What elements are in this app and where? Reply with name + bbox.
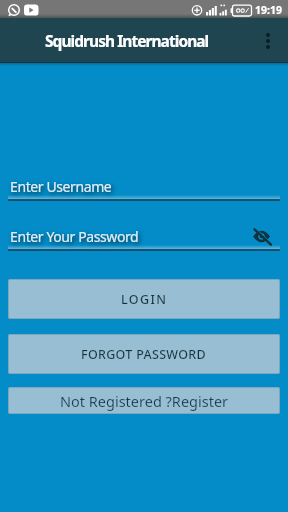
button[interactable]: Not Registered ?Register — [8, 387, 280, 414]
button[interactable] — [248, 18, 288, 63]
staticText: Enter Your Password — [10, 227, 139, 246]
staticText: 19:19 — [255, 3, 282, 17]
button[interactable]: FORGOT PASSWORD — [8, 334, 280, 374]
staticText: LOGIN — [121, 291, 168, 308]
staticText: FORGOT PASSWORD — [81, 346, 207, 363]
button[interactable]: Enter Your Password — [8, 224, 280, 251]
staticText: Enter Username — [10, 177, 112, 196]
button[interactable]: LOGIN — [8, 279, 280, 319]
staticText: Squidrush International — [45, 30, 209, 51]
button[interactable]: Enter Username — [8, 174, 280, 201]
staticText: Not Registered ?Register — [60, 391, 229, 411]
